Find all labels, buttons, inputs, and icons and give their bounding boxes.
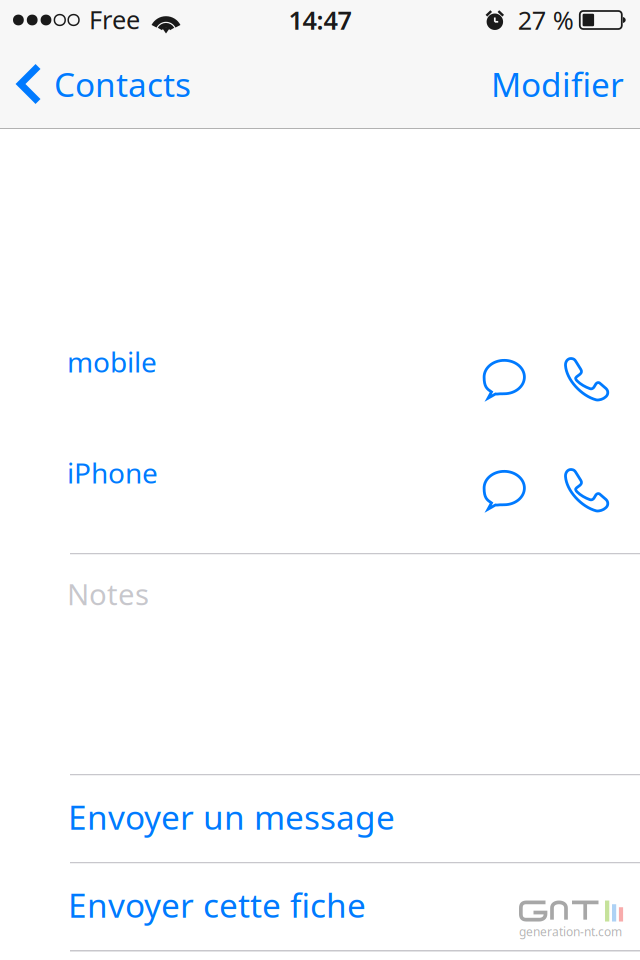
staticText: mobile <box>67 343 157 380</box>
button[interactable]: Modifier <box>475 40 640 128</box>
staticText: Envoyer un message <box>68 795 395 839</box>
button[interactable]: Appeler le numéro mobile <box>544 347 640 411</box>
staticText: generation-nt.com <box>519 923 622 939</box>
button[interactable]: Appeler le numéro iPhone <box>544 458 640 522</box>
button[interactable]: Envoyer un message au numéro iPhone <box>466 458 544 522</box>
button[interactable]: Envoyer un message au numéro mobile <box>466 347 544 411</box>
staticText: 27 % <box>518 3 574 37</box>
staticText: iPhone <box>67 454 158 491</box>
button[interactable]: Envoyer un message <box>0 775 640 862</box>
staticText: Modifier <box>491 62 624 106</box>
staticText: Notes <box>67 574 149 613</box>
staticText: 14:47 <box>288 3 351 37</box>
button[interactable]: Envoyer cette fiche <box>0 863 640 950</box>
button[interactable]: Contacts <box>0 40 203 128</box>
staticText: Envoyer cette fiche <box>68 883 366 927</box>
staticText: Contacts <box>54 62 191 106</box>
staticText: Free <box>89 3 140 36</box>
